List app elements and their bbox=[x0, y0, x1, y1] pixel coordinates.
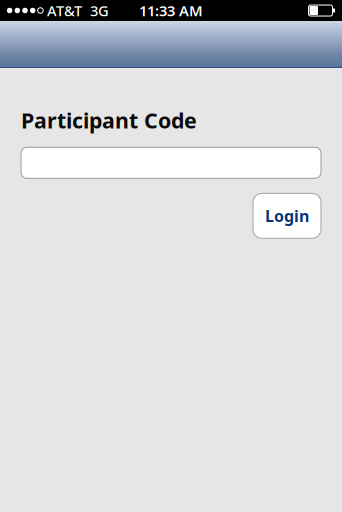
staticText: Login bbox=[265, 205, 309, 226]
staticText: 11:33 AM bbox=[139, 1, 203, 20]
staticText: AT&T bbox=[47, 1, 82, 20]
staticText: Participant Code bbox=[21, 106, 197, 134]
button[interactable]: Login bbox=[253, 193, 321, 238]
staticText: 3G bbox=[90, 1, 109, 20]
button[interactable]: Participant Code bbox=[21, 147, 321, 178]
